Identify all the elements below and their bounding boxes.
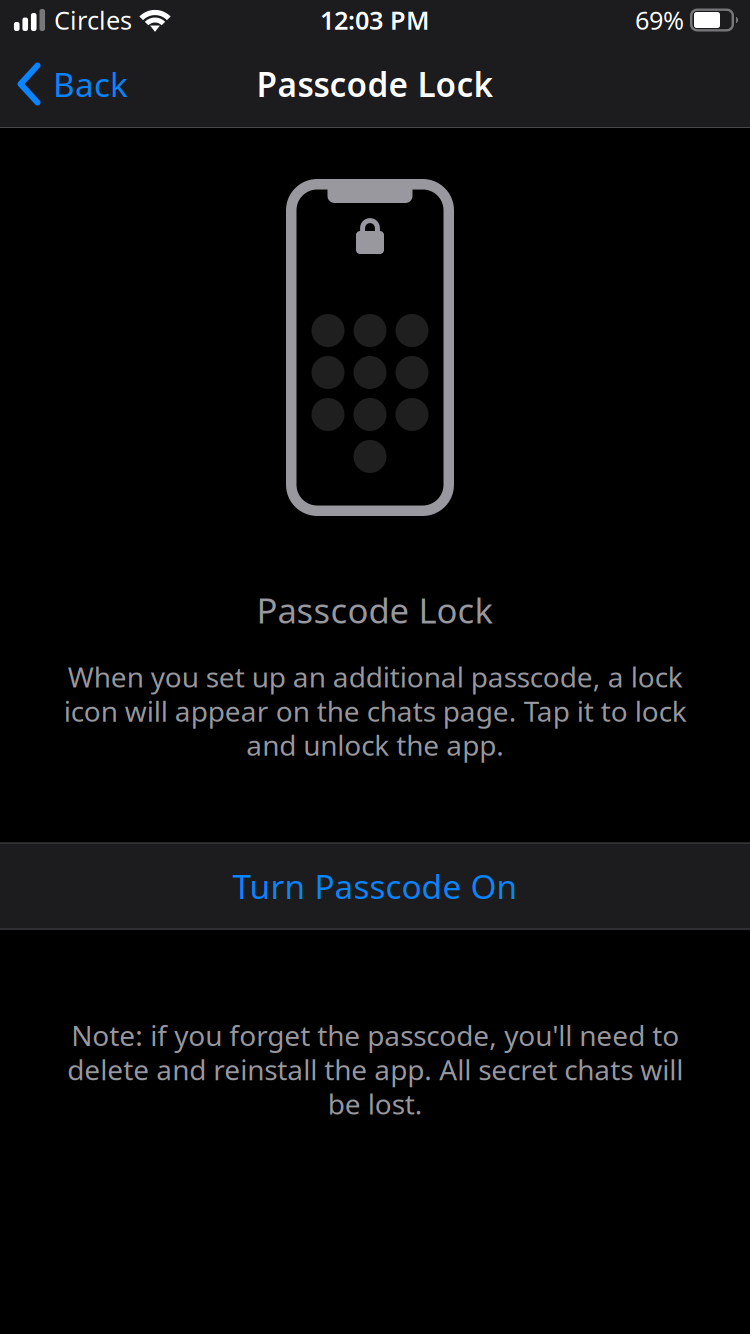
staticText: 69%	[635, 3, 684, 37]
staticText: Passcode Lock	[256, 62, 493, 106]
button[interactable]: Back	[0, 40, 142, 128]
staticText: Circles	[54, 3, 132, 37]
staticText: Note: if you forget the passcode, you'll…	[67, 1017, 683, 1122]
staticText: Passcode Lock	[256, 587, 493, 633]
button[interactable]: Turn Passcode On	[0, 843, 750, 930]
staticText: Back	[53, 62, 128, 106]
staticText: 12:03 PM	[320, 3, 430, 37]
staticText: Turn Passcode On	[232, 864, 517, 908]
staticText: When you set up an additional passcode, …	[63, 658, 686, 763]
